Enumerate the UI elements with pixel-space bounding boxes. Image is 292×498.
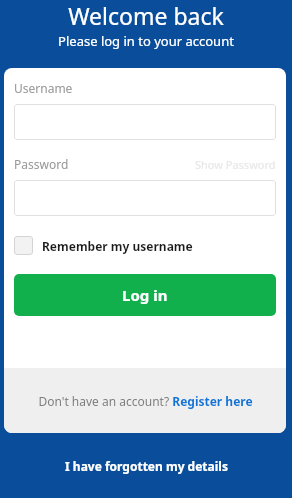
button[interactable]: Log in [14,274,276,316]
button[interactable]: Remember my username [14,234,193,257]
button[interactable] [14,180,276,216]
staticText: Username [14,80,73,96]
button[interactable]: Don't have an account? Register here [4,368,286,433]
staticText: Log in [122,285,168,305]
staticText: I have forgotten my details [65,458,228,474]
staticText: Password [14,156,69,172]
button[interactable]: I have forgotten my details [53,452,240,480]
button[interactable] [14,104,276,140]
staticText: Remember my username [42,238,193,254]
staticText: Please log in to your account [58,32,234,50]
staticText: Show Password [195,157,276,172]
staticText: Welcome back [68,0,224,30]
staticText: Don't have an account? Register here [38,393,253,409]
button[interactable]: Show Password [195,157,276,172]
